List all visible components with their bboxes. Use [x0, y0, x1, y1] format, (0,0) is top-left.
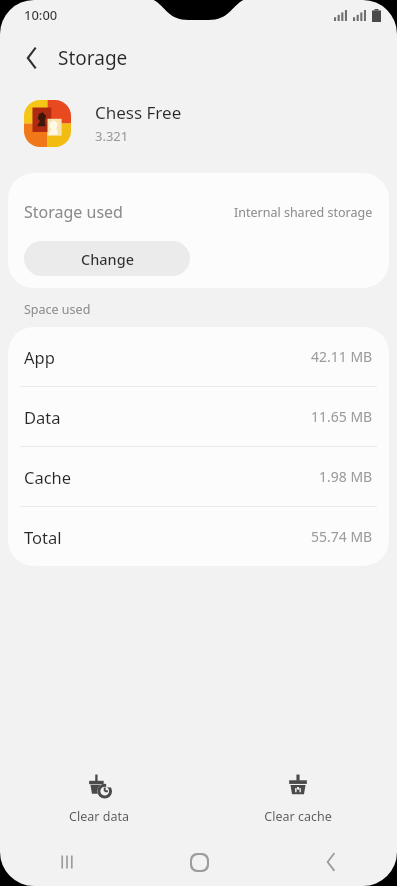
button[interactable]: Cache — [8, 447, 389, 506]
button[interactable]: Chess Free — [0, 86, 397, 160]
staticText: Clear cache — [264, 808, 332, 825]
button[interactable]: Recents — [0, 838, 133, 886]
staticText: 1.98 MB — [319, 467, 373, 486]
staticText: 11.65 MB — [311, 407, 373, 426]
button[interactable]: Clear data — [0, 760, 198, 838]
staticText: Clear data — [69, 808, 129, 825]
staticText: 3.321 — [95, 127, 129, 145]
staticText: Storage used — [24, 201, 123, 223]
staticText: Internal shared storage — [234, 204, 373, 221]
staticText: Space used — [24, 301, 91, 318]
button[interactable]: Home — [133, 838, 265, 886]
staticText: Storage — [58, 45, 128, 71]
staticText: Data — [24, 406, 61, 428]
staticText: 55.74 MB — [311, 527, 373, 546]
staticText: 42.11 MB — [311, 347, 373, 366]
staticText: 10:00 — [24, 6, 58, 24]
staticText: Change — [81, 249, 134, 269]
button[interactable]: Data — [8, 387, 389, 446]
button[interactable]: App — [8, 327, 389, 386]
staticText: Total — [24, 526, 62, 548]
button[interactable]: Back — [265, 838, 397, 886]
staticText: App — [24, 346, 55, 368]
staticText: Chess Free — [95, 101, 182, 124]
button[interactable]: Back — [12, 38, 52, 78]
button[interactable]: Total — [8, 507, 389, 566]
button[interactable]: Change — [24, 241, 190, 276]
staticText: Cache — [24, 466, 72, 488]
button[interactable]: Clear cache — [198, 760, 397, 838]
